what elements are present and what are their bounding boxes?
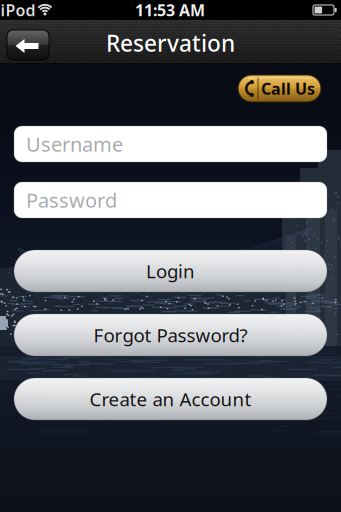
staticText: Username: [26, 131, 123, 157]
button[interactable]: Password: [14, 182, 327, 218]
staticText: Password: [26, 187, 117, 213]
button[interactable]: Call Us: [238, 75, 321, 102]
button[interactable]: Forgot Password?: [14, 314, 327, 356]
button[interactable]: Create an Account: [14, 378, 327, 420]
button[interactable]: Username: [14, 126, 327, 162]
staticText: iPod: [0, 0, 35, 21]
button[interactable]: Back: [7, 30, 49, 60]
staticText: Call Us: [261, 78, 315, 99]
staticText: Create an Account: [89, 387, 251, 411]
staticText: Forgot Password?: [93, 323, 247, 347]
staticText: Reservation: [106, 28, 235, 58]
staticText: Login: [146, 259, 195, 283]
staticText: 11:53 AM: [135, 0, 205, 21]
button[interactable]: Login: [14, 250, 327, 292]
